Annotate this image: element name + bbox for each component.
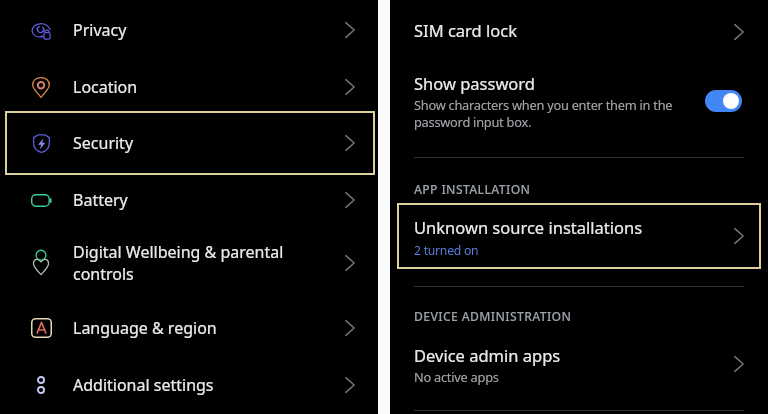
staticText: DEVICE ADMINISTRATION	[414, 308, 572, 325]
staticText: SIM card lock	[414, 19, 517, 41]
staticText: Digital Wellbeing & parental controls	[73, 241, 284, 285]
button[interactable]: Show password	[390, 62, 768, 138]
staticText: No active apps	[414, 368, 499, 385]
staticText: Location	[73, 76, 138, 98]
button[interactable]: Location	[0, 59, 378, 115]
button[interactable]: SIM card lock	[390, 6, 768, 58]
staticText: APP INSTALLATION	[414, 181, 531, 198]
staticText: Show password	[414, 72, 535, 94]
staticText: Show characters when you enter them in t…	[414, 96, 673, 130]
button[interactable]: Security	[0, 115, 378, 171]
button[interactable]: Unknown source installations	[390, 205, 768, 267]
button[interactable]: Device admin apps	[390, 333, 768, 395]
staticText: Security	[73, 132, 134, 154]
button[interactable]: Privacy	[0, 2, 378, 58]
staticText: Language & region	[73, 317, 217, 339]
staticText: Unknown source installations	[414, 216, 643, 238]
staticText: Device admin apps	[414, 344, 561, 366]
staticText: Additional settings	[73, 374, 214, 396]
button[interactable]: Show password toggle	[705, 90, 742, 112]
button[interactable]: Battery	[0, 172, 378, 228]
staticText: 2 turned on	[414, 242, 479, 259]
staticText: Battery	[73, 189, 128, 211]
button[interactable]: Language & region	[0, 300, 378, 356]
button[interactable]: Digital Wellbeing & parental controls	[0, 235, 378, 291]
staticText: Privacy	[73, 19, 127, 41]
button[interactable]: Additional settings	[0, 357, 378, 413]
